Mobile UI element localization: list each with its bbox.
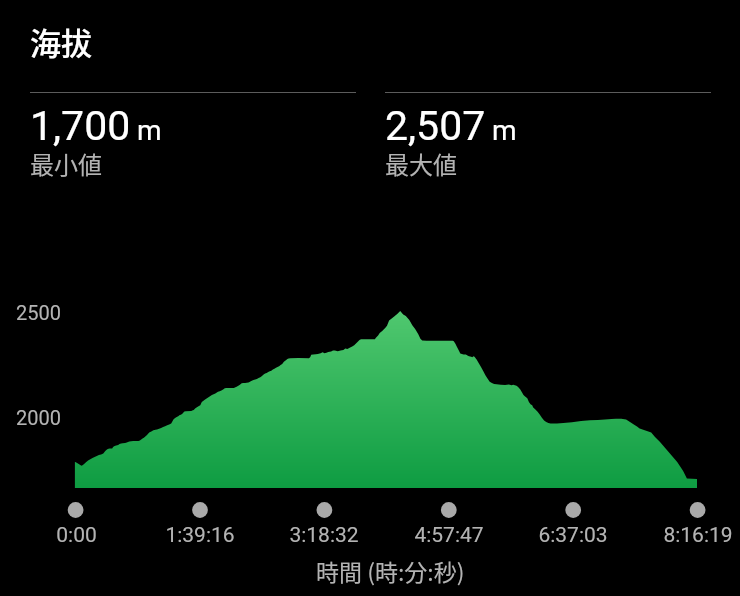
staticText: 1:39:16 [165,523,235,548]
button[interactable]: Elevation chart [0,290,740,596]
staticText: m [492,114,517,147]
button[interactable]: 海拔 [30,19,92,64]
staticText: 4:57:47 [414,523,484,548]
staticText: 時間 (時:分:秒) [316,554,465,587]
button[interactable]: 時間 (時:分:秒) [316,554,465,587]
staticText: 3:18:32 [289,523,359,548]
staticText: 6:37:03 [538,523,608,548]
staticText: 2000 [16,406,61,429]
staticText: 最小値 [30,146,102,181]
staticText: 0:00 [56,523,97,548]
staticText: 2,507 [385,102,486,150]
button[interactable]: 1,700 [30,92,356,176]
staticText: 8:16:19 [663,523,733,548]
staticText: 2500 [16,301,61,324]
staticText: 最大値 [385,146,457,181]
staticText: 1,700 [30,102,131,150]
staticText: 海拔 [30,19,92,64]
staticText: m [137,114,162,147]
button[interactable]: 2,507 [385,92,711,176]
